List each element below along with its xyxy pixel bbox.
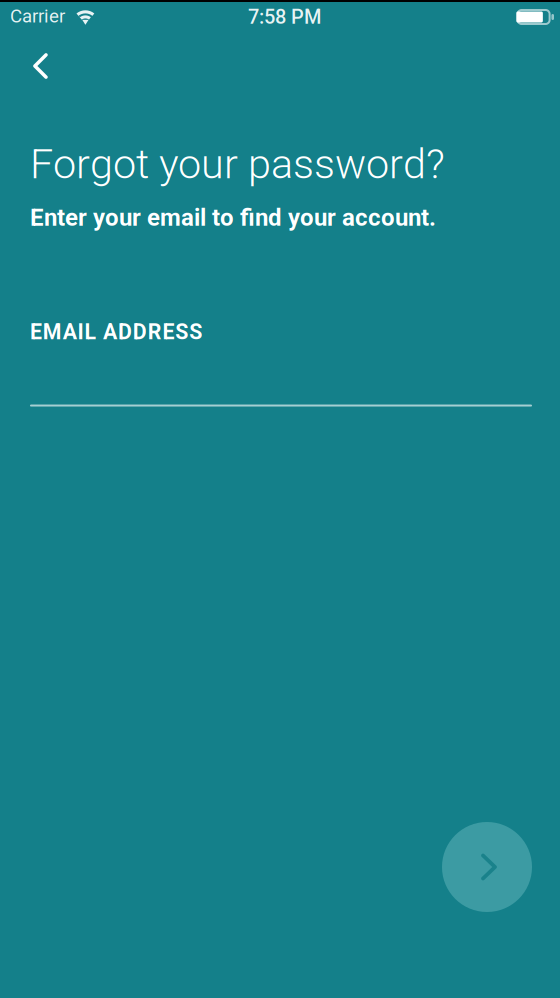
- button[interactable]: Back: [0, 44, 97, 88]
- staticText: EMAIL ADDRESS: [30, 320, 202, 345]
- button[interactable]: Continue: [442, 822, 532, 912]
- staticText: 7:58 PM: [248, 5, 321, 29]
- staticText: Forgot your password?: [30, 140, 445, 188]
- staticText: Enter your email to find your account.: [30, 203, 436, 231]
- staticText: Carrier: [10, 5, 65, 27]
